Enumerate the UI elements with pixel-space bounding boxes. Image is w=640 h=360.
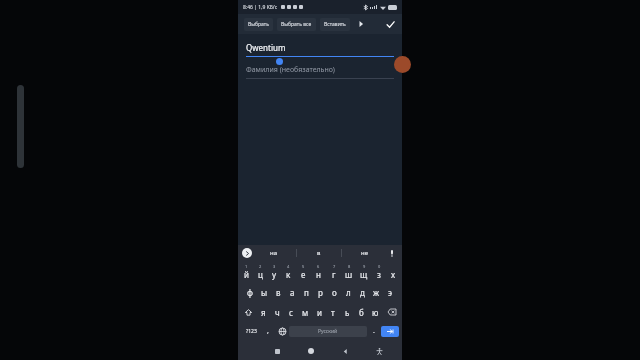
button[interactable]: х [386,261,401,282]
staticText: 9 [363,264,366,269]
staticText: э [388,287,392,298]
staticText: Вставить [324,21,346,28]
staticText: 8 [348,264,351,269]
staticText: т [331,307,335,318]
staticText: Выбрать все [281,21,312,28]
staticText: н [316,269,321,280]
staticText: 7 [333,264,336,269]
staticText: у [272,269,277,280]
button[interactable]: с [284,302,298,322]
staticText: ж [373,287,380,298]
button[interactable]: р [313,282,327,302]
button[interactable]: э [383,282,397,302]
button[interactable]: Done [382,16,398,32]
button[interactable]: 4 [281,261,296,282]
staticText: ч [275,307,280,318]
button[interactable]: о [327,282,341,302]
button[interactable]: Next [381,326,399,337]
button[interactable]: а [285,282,299,302]
button[interactable]: ю [368,302,382,322]
button[interactable]: т [326,302,340,322]
button[interactable]: ?123 [241,322,261,340]
button[interactable]: ф [243,282,257,302]
button[interactable]: ы [257,282,271,302]
staticText: на [270,249,278,257]
button[interactable]: , [261,322,275,340]
button[interactable]: ч [270,302,284,322]
button[interactable]: Change language [275,322,289,340]
button[interactable]: 0 [371,261,386,282]
staticText: 0 [378,264,381,269]
staticText: п [304,287,309,298]
button[interactable]: Вставить [320,18,350,31]
staticText: к [286,269,291,280]
button[interactable]: ж [369,282,383,302]
button[interactable]: Выбрать [244,18,273,31]
staticText: р [318,287,323,298]
button[interactable]: Русский [289,326,367,337]
button[interactable]: Back [338,344,352,358]
staticText: 2 [259,264,262,269]
staticText: 5 [302,264,305,269]
button[interactable]: 5 [296,261,311,282]
staticText: л [346,287,351,298]
staticText: д [360,287,365,298]
button[interactable]: б [354,302,368,322]
staticText: ш [345,269,353,280]
staticText: Выбрать [248,21,269,28]
staticText: в [276,287,281,298]
button[interactable]: 1 [239,261,253,282]
staticText: я [261,307,266,318]
button[interactable]: 3 [267,261,281,282]
staticText: . [373,326,375,336]
staticText: ю [372,307,379,318]
staticText: 8:46 | 1,9 KБ/c [243,4,278,11]
staticText: , [267,326,269,336]
button[interactable]: 2 [253,261,267,282]
button[interactable]: Expand toolbar [242,248,252,258]
staticText: ы [261,287,268,298]
button[interactable]: в [297,245,341,261]
staticText: в [317,249,321,257]
button[interactable]: д [355,282,369,302]
button[interactable]: Account [394,56,411,73]
button[interactable]: 6 [311,261,326,282]
button[interactable]: на [252,245,296,261]
button[interactable]: л [341,282,355,302]
button[interactable]: п [299,282,313,302]
staticText: а [290,287,295,298]
staticText: не [361,249,368,257]
staticText: б [359,307,364,318]
button[interactable]: Выбрать все [277,18,316,31]
button[interactable]: 7 [326,261,341,282]
staticText: 3 [273,264,276,269]
button[interactable]: 8 [341,261,356,282]
staticText: ?123 [246,328,257,335]
staticText: Qwentium [246,42,286,53]
staticText: г [332,269,336,280]
staticText: 1 [245,264,248,269]
button[interactable]: и [312,302,326,322]
button[interactable]: Voice input [386,247,398,259]
staticText: м [302,307,309,318]
button[interactable]: Home [304,344,318,358]
button[interactable]: Recents [270,344,284,358]
staticText: щ [360,269,368,280]
staticText: ф [247,287,253,298]
button[interactable]: 9 [356,261,371,282]
button[interactable]: Shift [239,302,257,322]
button[interactable]: м [298,302,312,322]
staticText: з [377,269,381,280]
button[interactable]: More options [355,18,367,30]
button[interactable]: ь [340,302,354,322]
staticText: е [301,269,306,280]
button[interactable]: я [257,302,270,322]
button[interactable]: . [367,322,381,340]
staticText: Фамилия (необязательно) [246,65,335,75]
staticText: 6 [317,264,320,269]
staticText: ц [258,269,263,280]
button[interactable]: Accessibility [372,344,386,358]
button[interactable]: не [342,245,386,261]
button[interactable]: в [271,282,285,302]
button[interactable]: Backspace [382,302,401,322]
